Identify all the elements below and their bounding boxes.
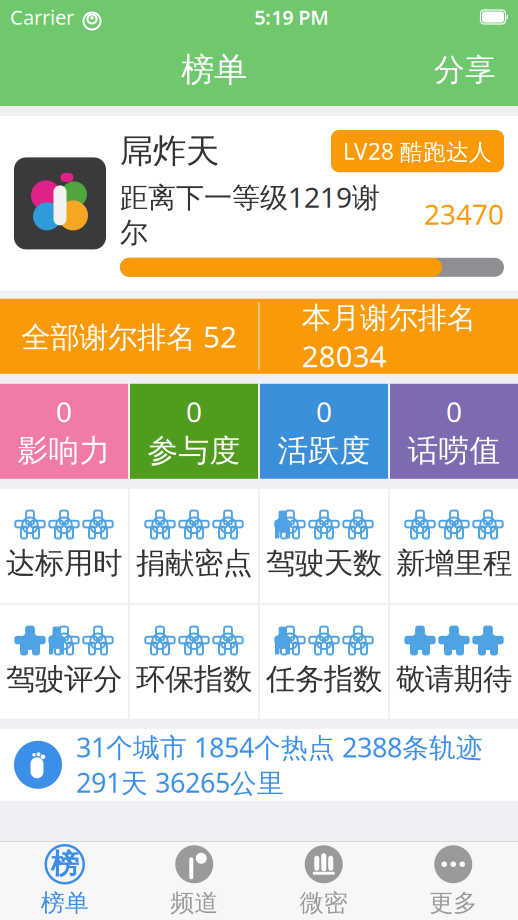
button[interactable]: 分享 xyxy=(420,43,510,97)
staticText: 活跃度 xyxy=(277,432,370,470)
staticText: 驾驶天数 xyxy=(266,545,382,581)
staticText: 0 xyxy=(316,393,332,430)
staticText: 5:19 PM xyxy=(254,4,329,30)
button[interactable]: 任务指数 xyxy=(260,605,388,719)
staticText: 本月谢尔排名 28034 xyxy=(302,297,476,375)
staticText: 0 xyxy=(446,393,462,430)
button[interactable]: 微密 xyxy=(259,842,388,920)
staticText: 话唠值 xyxy=(407,432,500,470)
button[interactable]: 更多 xyxy=(388,842,518,920)
button[interactable]: 新增里程 xyxy=(390,489,518,603)
button[interactable]: 0 xyxy=(0,384,128,479)
staticText: 环保指数 xyxy=(136,661,252,697)
button[interactable]: 榜单 xyxy=(0,842,129,920)
staticText: 更多 xyxy=(429,888,477,918)
staticText: 榜单 xyxy=(181,49,247,90)
staticText: 微密 xyxy=(300,888,348,918)
staticText: 榜单 xyxy=(41,888,89,918)
staticText: 屌炸天 xyxy=(120,131,219,171)
button[interactable]: 驾驶评分 xyxy=(0,605,128,719)
staticText: 参与度 xyxy=(147,432,240,470)
staticText: 31个城市 1854个热点 2388条轨迹 291天 36265公里 xyxy=(76,729,483,800)
button[interactable]: 达标用时 xyxy=(0,489,128,603)
button[interactable]: 敬请期待 xyxy=(390,605,518,719)
staticText: LV28 酷跑达人 xyxy=(343,136,492,166)
button[interactable]: 捐献密点 xyxy=(130,489,258,603)
button[interactable]: 31个城市 1854个热点 2388条轨迹 291天 36265公里 xyxy=(0,729,518,801)
button[interactable]: 0 xyxy=(390,384,518,479)
button[interactable]: 驾驶天数 xyxy=(260,489,388,603)
staticText: 敬请期待 xyxy=(396,661,512,697)
staticText: 新增里程 xyxy=(396,545,512,581)
staticText: 任务指数 xyxy=(266,661,382,697)
staticText: 驾驶评分 xyxy=(6,661,122,697)
button[interactable]: 频道 xyxy=(129,842,259,920)
staticText: 距离下一等级1219谢尔 xyxy=(120,178,380,250)
staticText: Carrier xyxy=(10,4,74,30)
staticText: 23470 xyxy=(424,195,504,233)
button[interactable]: 环保指数 xyxy=(130,605,258,719)
button[interactable]: 0 xyxy=(260,384,388,479)
button[interactable]: LV28 酷跑达人 xyxy=(331,130,504,172)
button[interactable]: 全部谢尔排名 52 xyxy=(0,299,258,374)
staticText: 分享 xyxy=(434,51,496,89)
staticText: 影响力 xyxy=(17,432,110,470)
button[interactable]: 0 xyxy=(130,384,258,479)
staticText: 频道 xyxy=(170,888,218,918)
staticText: 达标用时 xyxy=(6,545,122,581)
staticText: 0 xyxy=(56,393,72,430)
staticText: 捐献密点 xyxy=(136,545,252,581)
staticText: 全部谢尔排名 52 xyxy=(21,317,237,356)
button[interactable]: 本月谢尔排名 28034 xyxy=(259,299,518,374)
staticText: 榜 xyxy=(51,847,79,881)
staticText: 0 xyxy=(186,393,202,430)
